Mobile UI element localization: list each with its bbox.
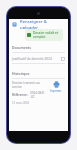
staticText: Dossier validé et complet [33,31,61,39]
button[interactable]: Dossier validé et complet [25,29,63,41]
staticText: Référence : [12,93,30,97]
other: Print [53,81,60,88]
staticText: Justificatif de domicile 2024 [12,57,52,61]
staticText: Documents [12,45,31,50]
staticText: Dossier transmis au service [12,81,45,89]
staticText: 2024-0841-XC [30,91,45,99]
staticText: Imprimer [50,89,62,93]
button[interactable]: Print [47,81,65,93]
other: Open document [61,57,65,61]
staticText: Renseigner & uploader [20,19,65,29]
other: Documents [12,22,17,27]
staticText: Historique [12,71,30,76]
button[interactable]: Documents [9,19,68,29]
button[interactable]: Justificatif de domicile 2024 [9,55,68,63]
staticText: 12 mars 2024 [12,101,30,105]
